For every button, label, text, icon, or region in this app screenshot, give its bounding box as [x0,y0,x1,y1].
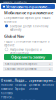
staticText: Партнёрам [42,79,55,82]
staticText: Помощь [15,83,26,87]
staticText: example.com/help [3,1,27,4]
button[interactable]: Помощь [15,83,28,87]
staticText: Контакты [1,91,13,95]
button[interactable]: Назад [1,0,2,5]
button[interactable]: Сколько стоит доставка [3,67,53,71]
staticText: + [49,62,51,66]
button[interactable]: Оформить заявку [4,54,52,60]
staticText: О компании [1,79,14,82]
button[interactable]: Партнёрам [42,79,55,82]
staticText: Оформить заявку [11,54,45,60]
staticText: Сервисы [28,79,41,82]
button[interactable]: Сервисы [28,79,41,82]
button[interactable]: Как подключить сервис [3,62,53,66]
staticText: Сколько стоит доставка [5,67,36,71]
staticText: Оплата [28,87,37,91]
staticText: ⋯ [52,1,55,4]
staticText: Условия [42,83,54,87]
staticText: Доставка [28,83,39,87]
staticText: Как подключить сервис [5,62,37,66]
button[interactable]: Реквизиты [1,96,14,99]
staticText: История операций за период [10,56,52,59]
button[interactable]: Установить приложение [1,4,55,9]
staticText: Новости [1,83,13,87]
staticText: ‹ [1,0,2,5]
staticText: Настройки профиля и уведомлений [10,48,42,55]
staticText: Мобильное приложение [4,10,53,15]
staticText: Установить приложение [6,4,52,9]
staticText: Современный сервис для наших клиентов [4,16,50,23]
staticText: Вакансии [1,87,13,91]
button[interactable]: Вакансии [1,87,14,91]
button[interactable]: Условия [42,83,55,87]
button[interactable]: Контакты [1,91,14,95]
staticText: Раздел с описанием навигации в сервисе [4,40,50,47]
staticText: Global Nav [4,33,24,39]
button[interactable]: Поддержка [15,79,28,82]
staticText: Поддержка [15,79,28,82]
button[interactable]: О компании [1,79,14,82]
button[interactable]: Тарифы [15,87,28,91]
button[interactable]: Новости [1,83,14,87]
staticText: Реквизиты [1,96,14,99]
staticText: Тарифы [15,87,25,91]
staticText: + [49,67,51,71]
button[interactable]: Оплата [28,87,41,91]
staticText: Быстрый доступ к личному кабинету [10,24,48,31]
button[interactable]: Доставка [28,83,41,87]
